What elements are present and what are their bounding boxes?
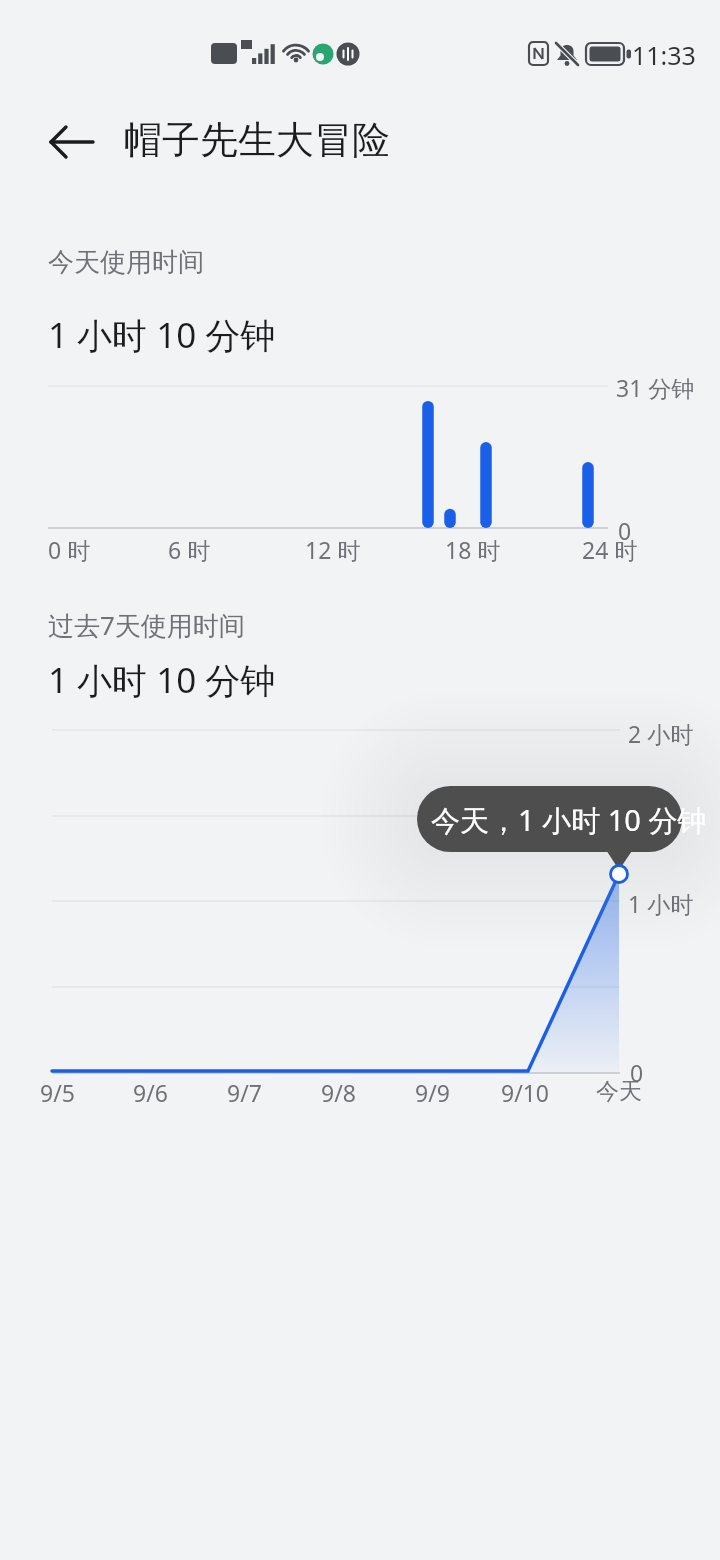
staticText: 31 分钟 bbox=[616, 372, 695, 403]
staticText: 24 时 bbox=[582, 534, 638, 565]
staticText: 6 时 bbox=[168, 534, 211, 565]
staticText: 今天 bbox=[596, 1077, 642, 1106]
staticText: 1 小时 10 分钟 bbox=[48, 656, 276, 704]
staticText: 9/6 bbox=[133, 1077, 168, 1108]
staticText: 9/9 bbox=[415, 1077, 450, 1108]
staticText: 帽子先生大冒险 bbox=[124, 116, 390, 164]
staticText: 2 小时 bbox=[628, 718, 694, 749]
staticText: 0 bbox=[630, 1057, 644, 1088]
staticText: 1 小时 bbox=[628, 888, 694, 919]
staticText: 12 时 bbox=[305, 534, 361, 565]
button[interactable]: 返回 bbox=[42, 112, 104, 172]
staticText: 过去7天使用时间 bbox=[48, 607, 245, 643]
staticText: 9/10 bbox=[501, 1077, 550, 1108]
staticText: 1 小时 10 分钟 bbox=[48, 311, 276, 359]
staticText: 今天，1 小时 10 分钟 bbox=[431, 800, 707, 840]
staticText: 9/7 bbox=[227, 1077, 262, 1108]
staticText: 0 bbox=[618, 515, 632, 546]
staticText: 今天使用时间 bbox=[48, 246, 204, 279]
staticText: 9/8 bbox=[321, 1077, 356, 1108]
staticText: 9/5 bbox=[40, 1077, 75, 1108]
staticText: 11:33 bbox=[632, 38, 696, 72]
staticText: 0 时 bbox=[48, 534, 91, 565]
staticText: 18 时 bbox=[445, 534, 501, 565]
